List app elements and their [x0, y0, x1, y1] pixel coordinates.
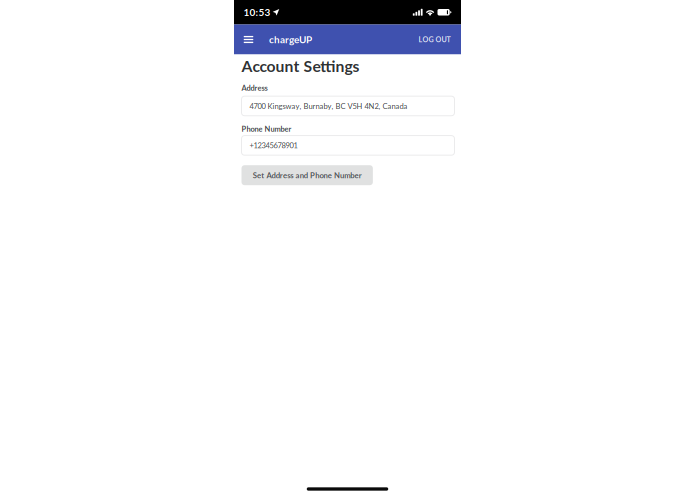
staticText: Phone Number — [241, 124, 291, 133]
staticText: LOG OUT — [418, 35, 450, 44]
button[interactable]: chargeUP — [258, 24, 312, 54]
staticText: Account Settings — [241, 56, 359, 75]
staticText: chargeUP — [269, 33, 312, 45]
staticText: 4700 Kingsway, Burnaby, BC V5H 4N2, Cana… — [249, 101, 407, 110]
button[interactable]: Set Address and Phone Number — [241, 165, 373, 185]
button[interactable]: LOG OUT — [415, 24, 453, 54]
staticText: +12345678901 — [249, 141, 297, 150]
staticText: 10:53 — [243, 6, 270, 18]
button[interactable]: Menu — [239, 24, 258, 54]
button[interactable]: 4700 Kingsway, Burnaby, BC V5H 4N2, Cana… — [241, 96, 454, 116]
button[interactable]: +12345678901 — [241, 136, 454, 155]
staticText: Address — [241, 83, 267, 92]
staticText: Set Address and Phone Number — [253, 171, 361, 180]
